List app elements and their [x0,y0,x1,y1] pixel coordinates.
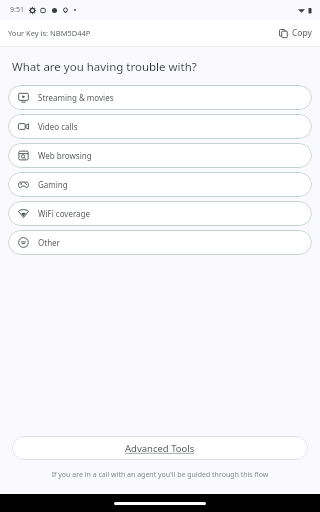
staticText: Gaming [38,179,68,190]
staticText: Your Key is: NBM5D44P [8,28,91,38]
button[interactable]: Web browsing [8,143,312,168]
button[interactable]: Other [8,230,312,255]
button[interactable]: WiFi coverage [8,201,312,226]
button[interactable]: Advanced Tools [12,436,308,460]
staticText: If you are in a call with an agent you'l… [16,470,304,480]
button[interactable]: Copy [271,20,320,46]
staticText: Other [38,237,60,248]
staticText: Advanced Tools [125,442,195,455]
staticText: WiFi coverage [38,208,90,219]
staticText: 9:51 [10,5,24,15]
staticText: Web browsing [38,150,92,161]
button[interactable]: Gaming [8,172,312,197]
button[interactable]: Streaming & movies [8,85,312,110]
staticText: What are you having trouble with? [12,59,197,75]
staticText: Streaming & movies [38,92,114,103]
staticText: Video calls [38,121,78,132]
staticText: Copy [292,27,312,39]
button[interactable]: Video calls [8,114,312,139]
